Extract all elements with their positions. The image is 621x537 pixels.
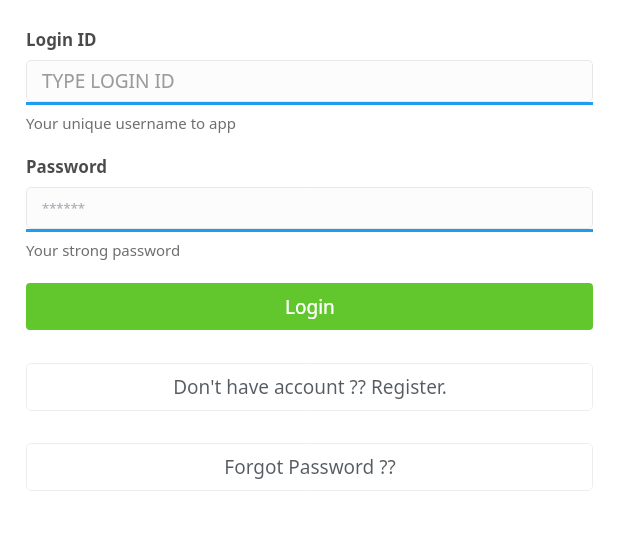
staticText: TYPE LOGIN ID — [42, 68, 175, 94]
button[interactable]: Forgot Password ?? — [26, 443, 593, 491]
staticText: Login ID — [26, 28, 97, 51]
staticText: Your unique username to app — [26, 113, 236, 133]
staticText: ****** — [42, 199, 85, 217]
staticText: Login — [285, 294, 335, 320]
staticText: Password — [26, 155, 107, 178]
staticText: Your strong password — [26, 240, 181, 260]
staticText: Forgot Password ?? — [224, 454, 396, 480]
button[interactable]: Login — [26, 283, 593, 330]
staticText: Don't have account ?? Register. — [173, 374, 447, 400]
button[interactable]: Don't have account ?? Register. — [26, 363, 593, 411]
button[interactable]: TYPE LOGIN ID — [26, 60, 593, 105]
button[interactable]: ****** — [26, 187, 593, 232]
